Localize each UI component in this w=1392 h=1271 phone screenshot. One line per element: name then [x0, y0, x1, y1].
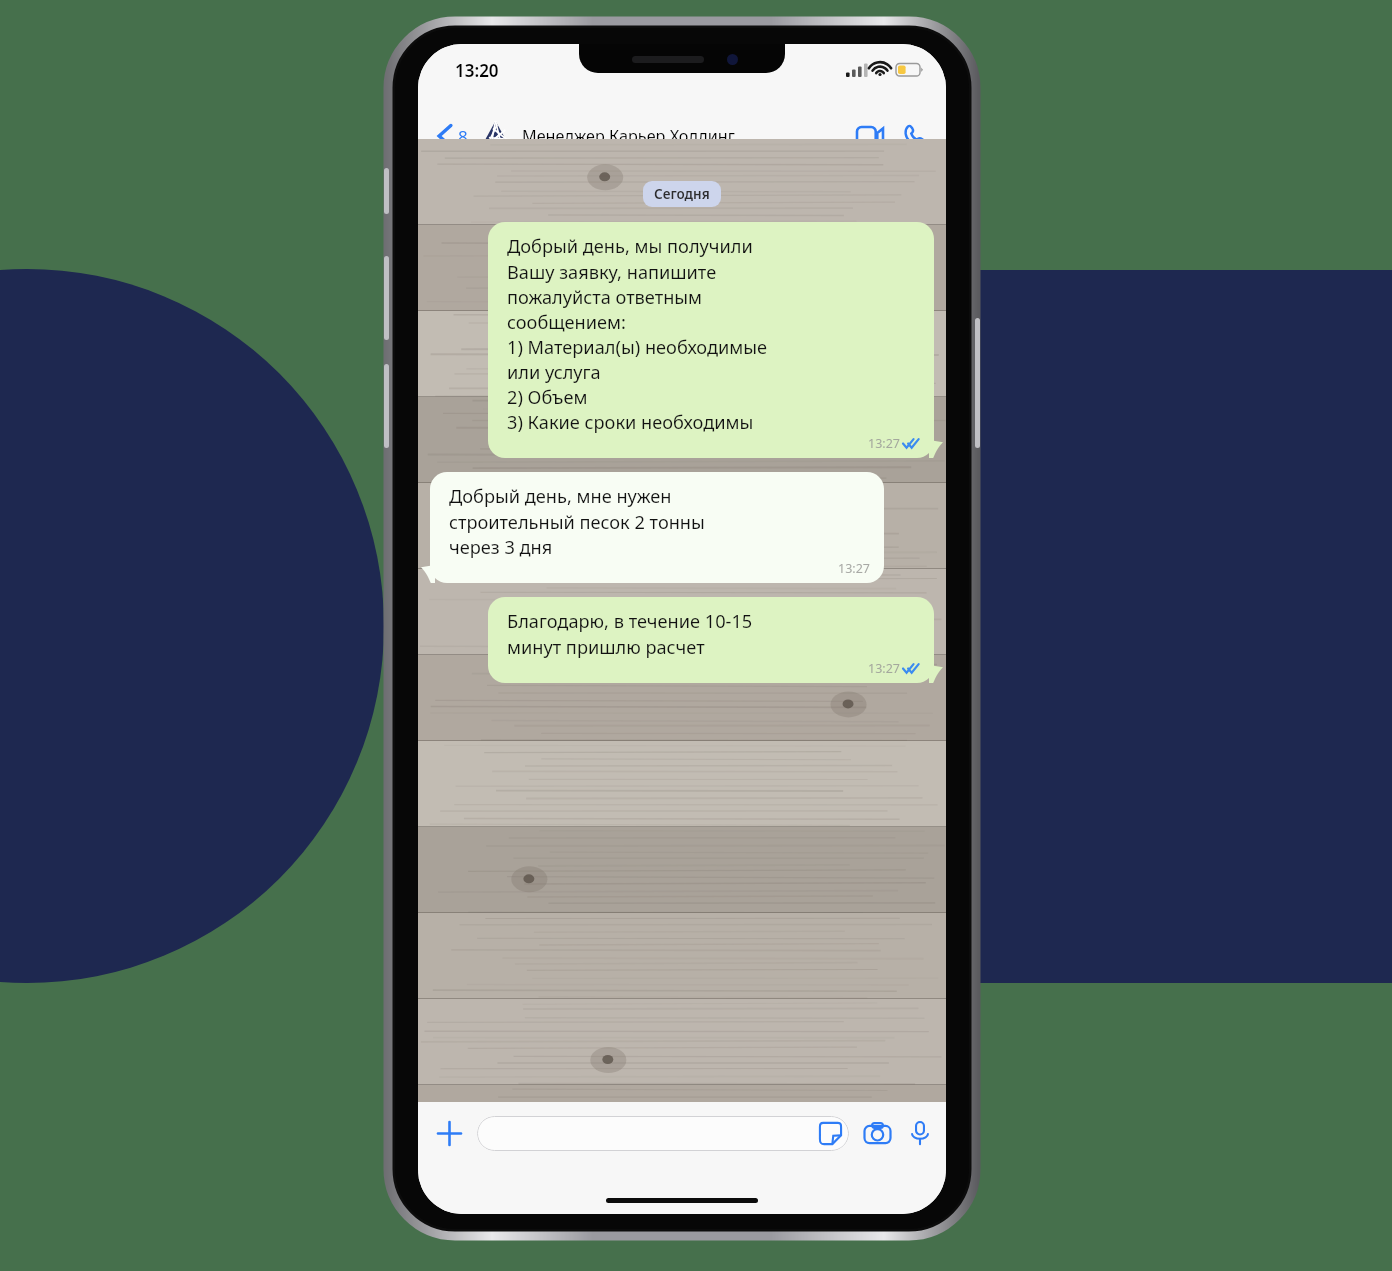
button[interactable]: Voice message: [908, 1118, 932, 1148]
button[interactable]: Добрый день, мне нужен строительный песо…: [430, 472, 884, 583]
staticText: Менеджер Карьер Холдинг: [522, 125, 849, 147]
button[interactable]: Добрый день, мы получили Вашу заявку, на…: [488, 222, 934, 458]
staticText: Сегодня: [654, 185, 710, 203]
button[interactable]: Camera: [861, 1119, 894, 1147]
staticText: Добрый день, мне нужен строительный песо…: [449, 484, 705, 559]
button[interactable]: Call: [899, 121, 930, 152]
staticText: 13:27: [838, 560, 870, 577]
staticText: 13:27: [868, 435, 900, 452]
staticText: Добрый день, мы получили Вашу заявку, на…: [507, 234, 768, 434]
button[interactable]: Stickers: [477, 1116, 849, 1151]
button[interactable]: Back, 8 unread: [436, 118, 470, 154]
other: Stickers: [819, 1122, 842, 1145]
staticText: 13:20: [455, 59, 499, 82]
button[interactable]: Video call: [853, 123, 887, 150]
button[interactable]: Благодарю, в течение 10-15 минут пришлю …: [488, 597, 934, 683]
staticText: Благодарю, в течение 10-15 минут пришлю …: [507, 609, 753, 659]
button[interactable]: Attach: [432, 1116, 467, 1151]
staticText: 13:27: [868, 660, 900, 677]
staticText: 8: [458, 125, 468, 148]
